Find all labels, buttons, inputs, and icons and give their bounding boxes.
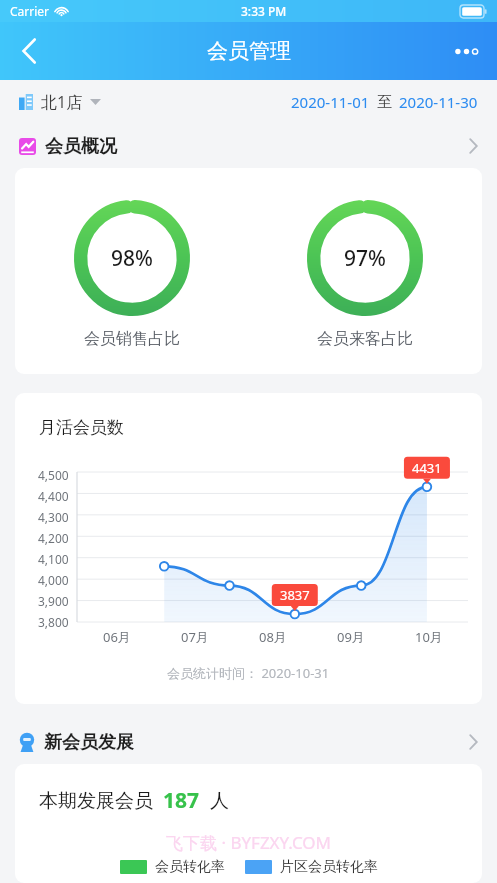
staticText: 本期发展会员 bbox=[39, 789, 153, 813]
staticText: 4,100 bbox=[38, 551, 69, 567]
staticText: 月活会员数 bbox=[39, 417, 124, 438]
staticText: 会员管理 bbox=[207, 38, 291, 64]
staticText: 09月 bbox=[337, 628, 365, 646]
staticText: 4,300 bbox=[38, 509, 69, 525]
staticText: 会员统计时间： 2020-10-31 bbox=[167, 664, 330, 682]
staticText: 97% bbox=[344, 244, 386, 273]
staticText: 3,800 bbox=[38, 614, 69, 630]
staticText: 新会员发展 bbox=[44, 731, 134, 754]
staticText: 2020-11-01 bbox=[291, 92, 370, 112]
button[interactable]: Back bbox=[4, 26, 54, 76]
staticText: 06月 bbox=[103, 628, 131, 646]
staticText: 会员销售占比 bbox=[84, 329, 180, 349]
staticText: 北1店 bbox=[41, 91, 83, 113]
staticText: Carrier bbox=[10, 3, 50, 19]
staticText: 3837 bbox=[280, 586, 310, 604]
staticText: 会员概况 bbox=[45, 135, 117, 158]
staticText: 4,000 bbox=[38, 572, 69, 588]
staticText: 4,400 bbox=[38, 488, 69, 504]
staticText: 187 bbox=[163, 786, 200, 815]
staticText: 片区会员转化率 bbox=[280, 858, 378, 875]
staticText: 3:33 PM bbox=[241, 3, 287, 19]
staticText: 4,500 bbox=[38, 467, 69, 483]
staticText: 飞下载 · BYFZXY.COM bbox=[166, 831, 331, 854]
button[interactable]: 新会员发展 bbox=[0, 720, 497, 764]
staticText: 会员来客占比 bbox=[317, 329, 413, 349]
staticText: 07月 bbox=[181, 628, 209, 646]
staticText: 3,900 bbox=[38, 593, 69, 609]
button[interactable]: 北1店 bbox=[19, 85, 101, 119]
button[interactable]: More options bbox=[441, 26, 491, 76]
staticText: 2020-11-30 bbox=[399, 92, 478, 112]
staticText: 会员转化率 bbox=[155, 858, 225, 875]
staticText: 人 bbox=[210, 789, 229, 813]
staticText: 10月 bbox=[415, 628, 443, 646]
button[interactable]: 2020-11-01 bbox=[291, 86, 478, 118]
staticText: 08月 bbox=[259, 628, 287, 646]
staticText: 4431 bbox=[412, 459, 442, 477]
staticText: 4,200 bbox=[38, 530, 69, 546]
staticText: 98% bbox=[111, 244, 153, 273]
staticText: 至 bbox=[377, 93, 392, 112]
button[interactable]: 会员概况 bbox=[0, 124, 497, 168]
